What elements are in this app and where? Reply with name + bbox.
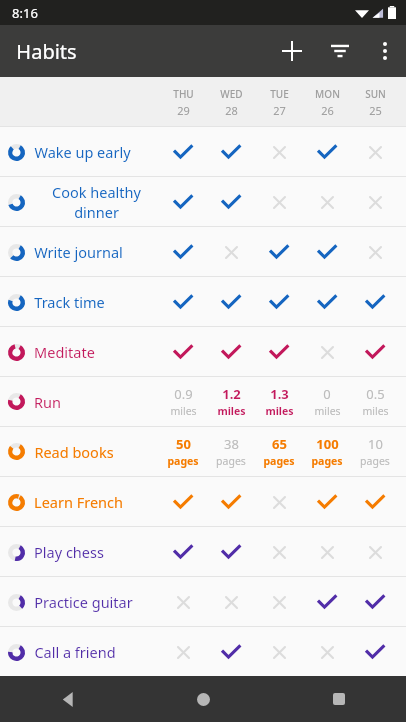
button[interactable]: Meditate — [0, 327, 406, 376]
button[interactable]: Back — [0, 676, 136, 722]
staticText: 8:16 — [12, 4, 38, 22]
staticText: 50 — [176, 435, 191, 453]
staticText: Cook healthy dinner — [34, 182, 159, 222]
button[interactable]: Home — [136, 676, 271, 722]
staticText: pages — [311, 454, 343, 468]
button[interactable]: Practice guitar — [0, 577, 406, 626]
staticText: Habits — [16, 38, 77, 65]
staticText: THU — [173, 87, 194, 101]
staticText: 1.3 — [270, 385, 289, 403]
staticText: miles — [314, 404, 341, 418]
staticText: MON — [315, 87, 340, 101]
staticText: 0.9 — [174, 385, 193, 403]
staticText: Practice guitar — [34, 592, 133, 612]
staticText: 28 — [225, 103, 238, 118]
staticText: 1.2 — [222, 385, 241, 403]
staticText: miles — [362, 404, 389, 418]
button[interactable]: Wake up early — [0, 127, 406, 176]
staticText: Play chess — [34, 542, 104, 562]
staticText: 0 — [323, 385, 331, 403]
button[interactable]: Write journal — [0, 227, 406, 276]
staticText: TUE — [270, 87, 289, 101]
staticText: 0.5 — [366, 385, 385, 403]
staticText: pages — [216, 454, 246, 468]
staticText: Learn French — [34, 492, 123, 512]
staticText: Run — [34, 392, 61, 412]
staticText: 26 — [321, 103, 334, 118]
button[interactable]: Cook healthy dinner — [0, 177, 406, 226]
button[interactable]: Filter — [316, 27, 364, 75]
button[interactable]: Read books — [0, 427, 406, 476]
staticText: Meditate — [34, 342, 95, 362]
staticText: 38 — [224, 435, 239, 453]
button[interactable]: Recent apps — [271, 676, 406, 722]
button[interactable]: Call a friend — [0, 627, 406, 676]
button[interactable]: Add habit — [268, 27, 316, 75]
staticText: Read books — [34, 442, 114, 462]
staticText: pages — [360, 454, 390, 468]
staticText: Write journal — [34, 242, 123, 262]
staticText: SUN — [365, 87, 386, 101]
staticText: 10 — [368, 435, 383, 453]
staticText: Call a friend — [34, 642, 116, 662]
staticText: pages — [167, 454, 199, 468]
staticText: Track time — [34, 292, 105, 312]
staticText: miles — [217, 404, 246, 418]
staticText: miles — [265, 404, 294, 418]
staticText: pages — [263, 454, 295, 468]
staticText: WED — [220, 87, 243, 101]
staticText: 100 — [316, 435, 339, 453]
button[interactable]: Run — [0, 377, 406, 426]
staticText: 27 — [273, 103, 286, 118]
button[interactable]: Track time — [0, 277, 406, 326]
staticText: 25 — [369, 103, 382, 118]
staticText: 65 — [272, 435, 287, 453]
button[interactable]: More options — [364, 30, 406, 72]
button[interactable]: Play chess — [0, 527, 406, 576]
staticText: 29 — [177, 103, 190, 118]
button[interactable]: Learn French — [0, 477, 406, 526]
staticText: miles — [170, 404, 197, 418]
staticText: Wake up early — [34, 142, 131, 162]
